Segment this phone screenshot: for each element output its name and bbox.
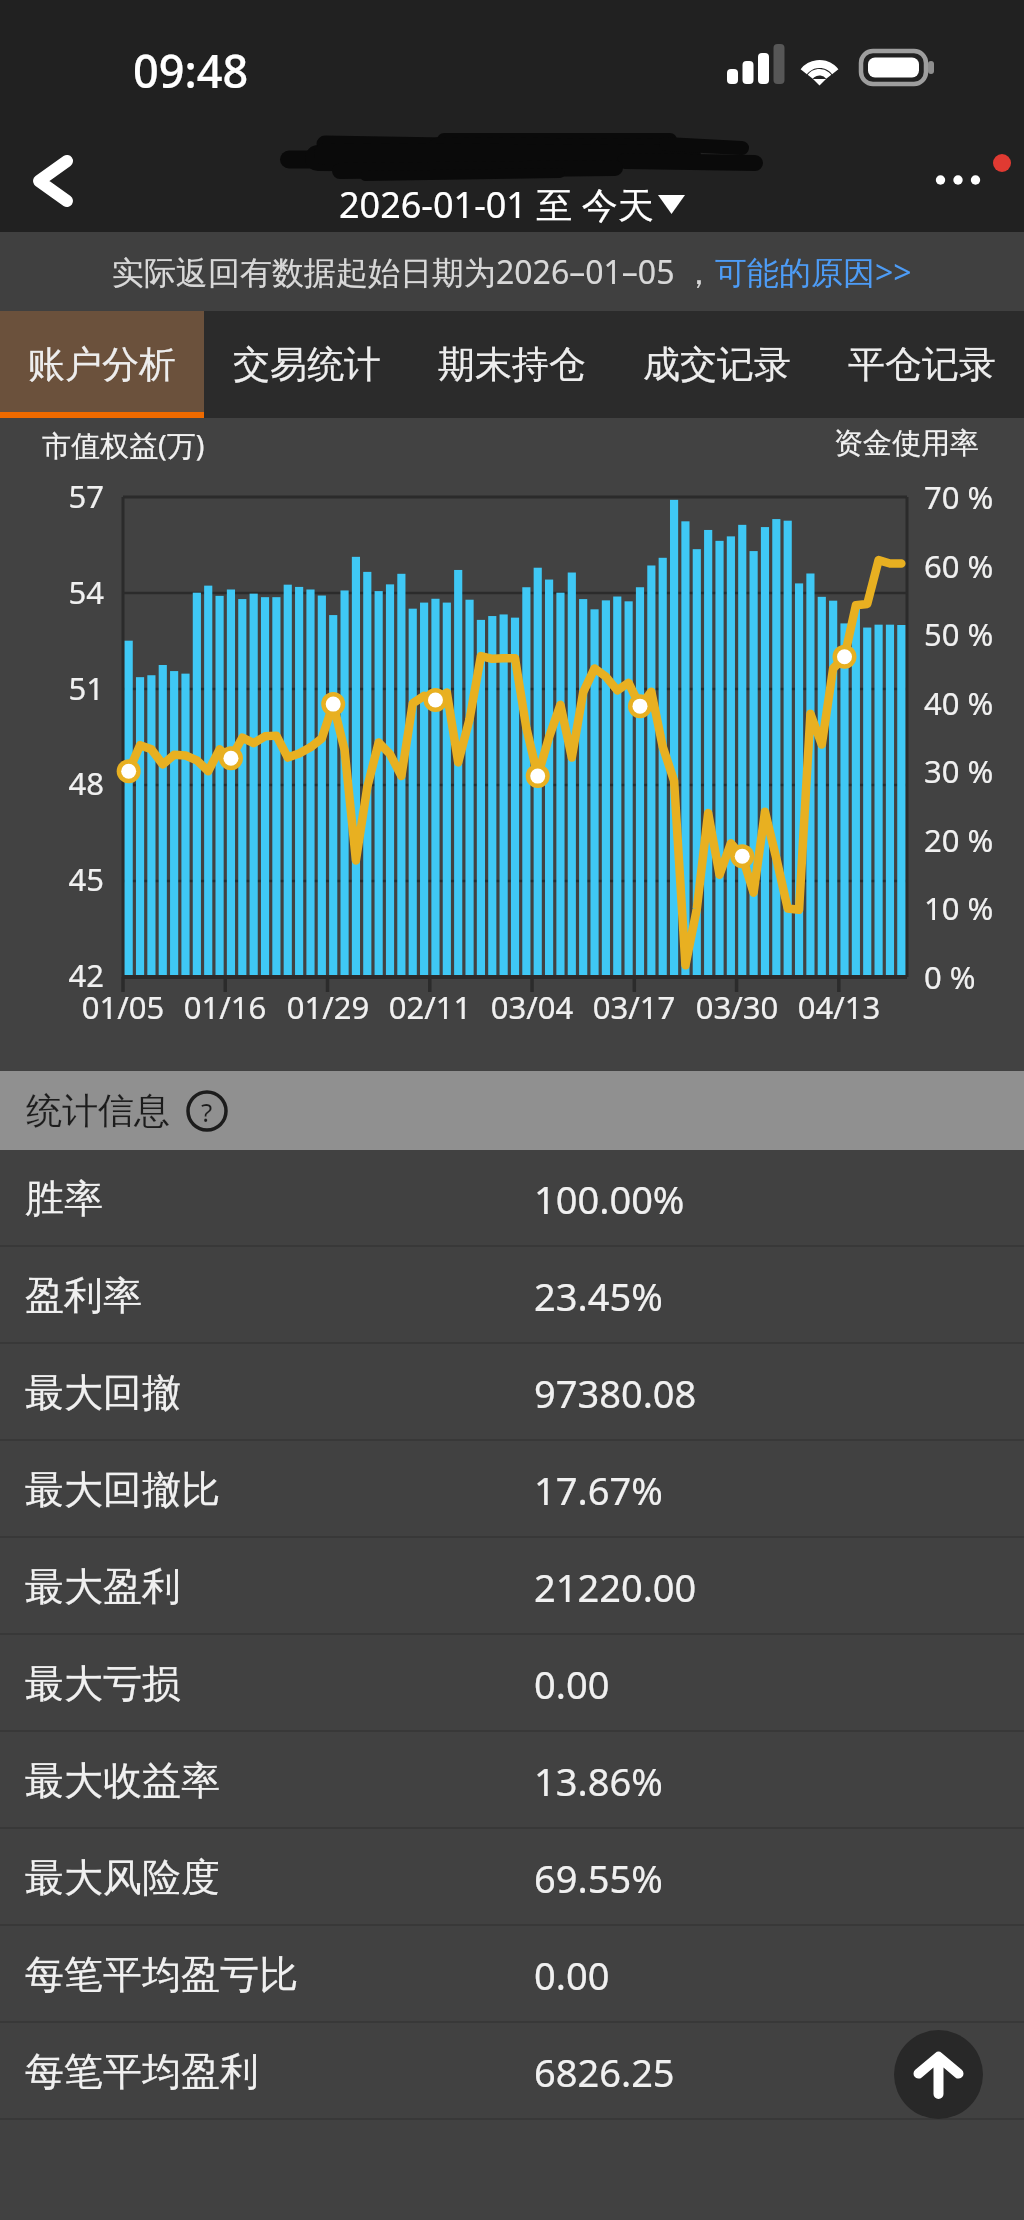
staticText: 2026-01-01 至 今天 — [339, 180, 654, 229]
button[interactable]: 账户分析 — [0, 311, 204, 418]
staticText: ? — [201, 1094, 213, 1129]
staticText: 03/30 — [669, 986, 805, 1028]
staticText: 0 % — [924, 956, 976, 998]
staticText: 13.86% — [534, 1755, 663, 1807]
staticText: 03/17 — [566, 986, 702, 1028]
staticText: 100.00% — [534, 1173, 685, 1225]
staticText: 盈利率 — [25, 1271, 142, 1320]
staticText: 42 — [24, 954, 104, 996]
button[interactable]: 可能的原因>> — [715, 250, 912, 294]
staticText: 每笔平均盈利 — [25, 2047, 259, 2096]
staticText: 最大收益率 — [25, 1756, 220, 1805]
staticText: 01/29 — [260, 986, 396, 1028]
staticText: 最大回撤 — [25, 1368, 181, 1417]
button[interactable]: 期末持仓 — [409, 311, 614, 418]
button[interactable]: Back — [8, 136, 98, 230]
staticText: 09:48 — [133, 40, 249, 101]
staticText: 60 % — [924, 545, 994, 587]
staticText: 45 — [24, 858, 104, 900]
staticText: 0.00 — [534, 1658, 610, 1710]
staticText: 40 % — [924, 682, 994, 724]
staticText: 最大盈利 — [25, 1562, 181, 1611]
staticText: 市值权益(万) — [42, 425, 205, 465]
staticText: 23.45% — [534, 1270, 663, 1322]
staticText: 统计信息 — [26, 1088, 170, 1133]
button[interactable]: 最大回撤 — [0, 1344, 1024, 1441]
staticText: 48 — [24, 762, 104, 804]
button[interactable]: 2026-01-01 至 今天 — [331, 174, 693, 235]
staticText: 最大亏损 — [25, 1659, 181, 1708]
button[interactable]: Scroll to top — [894, 2030, 983, 2119]
staticText: 6826.25 — [534, 2046, 675, 2098]
staticText: 0.00 — [534, 1949, 610, 2001]
staticText: 交易统计 — [233, 341, 381, 388]
button[interactable]: 最大亏损 — [0, 1635, 1024, 1732]
staticText: 平仓记录 — [848, 341, 996, 388]
staticText: 01/16 — [157, 986, 293, 1028]
staticText: 实际返回有数据起始日期为2026–01–05 ， — [112, 250, 715, 294]
button[interactable]: 胜率 — [0, 1150, 1024, 1247]
button[interactable]: Help — [186, 1090, 228, 1132]
button[interactable]: More options — [915, 130, 1020, 202]
button[interactable]: 盈利率 — [0, 1247, 1024, 1344]
button[interactable]: 交易统计 — [204, 311, 409, 418]
staticText: 10 % — [924, 887, 994, 929]
staticText: 70 % — [924, 476, 994, 518]
staticText: 30 % — [924, 750, 994, 792]
staticText: 可能的原因>> — [715, 250, 912, 294]
button[interactable]: 最大风险度 — [0, 1829, 1024, 1926]
button[interactable]: 成交记录 — [614, 311, 819, 418]
staticText: 最大回撤比 — [25, 1465, 220, 1514]
staticText: 胜率 — [25, 1174, 103, 1223]
staticText: 17.67% — [534, 1464, 663, 1516]
staticText: 57 — [24, 475, 104, 517]
staticText: 每笔平均盈亏比 — [25, 1950, 298, 1999]
staticText: 01/05 — [55, 986, 191, 1028]
staticText: 账户分析 — [28, 341, 176, 388]
button[interactable]: 最大收益率 — [0, 1732, 1024, 1829]
staticText: 03/04 — [464, 986, 600, 1028]
staticText: 期末持仓 — [438, 341, 586, 388]
staticText: 04/13 — [771, 986, 907, 1028]
staticText: 资金使用率 — [834, 425, 979, 462]
staticText: 54 — [24, 571, 104, 613]
staticText: 21220.00 — [534, 1561, 697, 1613]
staticText: 50 % — [924, 613, 994, 655]
button[interactable]: 每笔平均盈亏比 — [0, 1926, 1024, 2023]
staticText: 成交记录 — [643, 341, 791, 388]
button[interactable]: 每笔平均盈利 — [0, 2023, 1024, 2120]
staticText: 02/11 — [362, 986, 498, 1028]
button[interactable]: 最大盈利 — [0, 1538, 1024, 1635]
staticText: 20 % — [924, 819, 994, 861]
button[interactable]: 最大回撤比 — [0, 1441, 1024, 1538]
button[interactable]: 平仓记录 — [819, 311, 1024, 418]
staticText: 最大风险度 — [25, 1853, 220, 1902]
staticText: 51 — [24, 667, 104, 709]
staticText: 97380.08 — [534, 1367, 697, 1419]
staticText: 69.55% — [534, 1852, 663, 1904]
